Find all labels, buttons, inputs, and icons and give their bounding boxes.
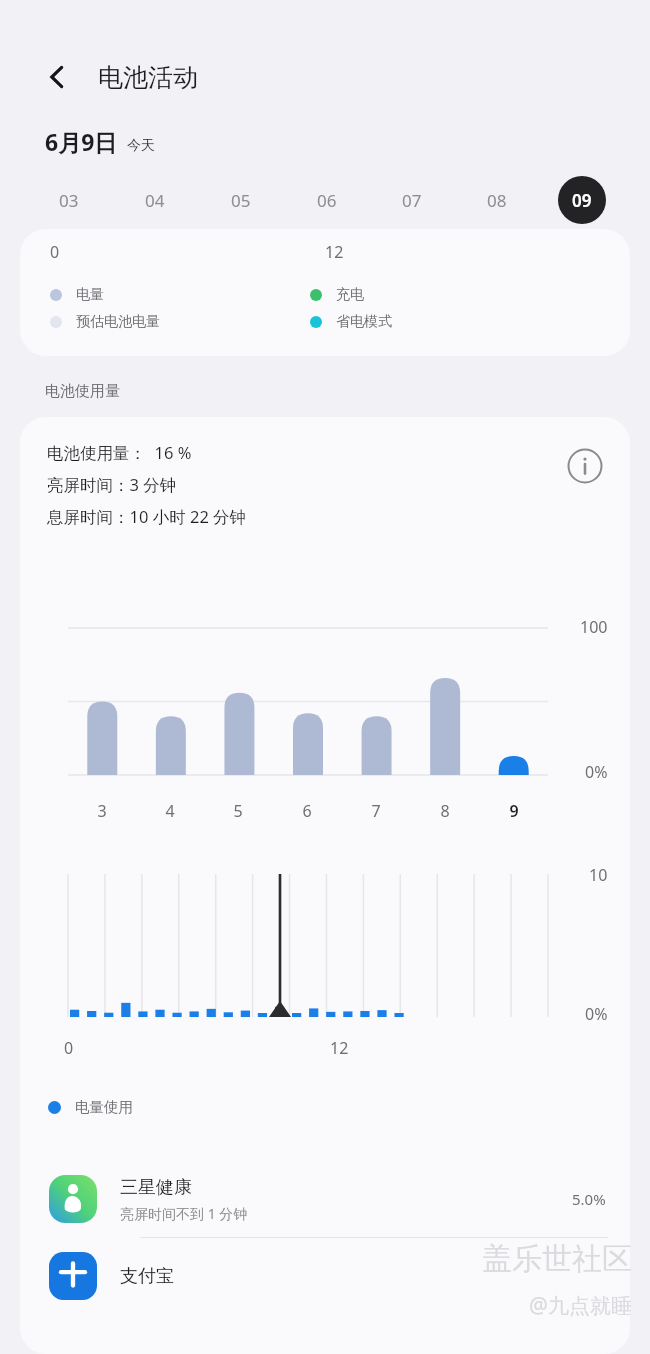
staticText: 9 xyxy=(509,800,519,822)
staticText: 3 xyxy=(97,800,107,822)
staticText: 电量 xyxy=(76,286,104,304)
staticText: 0 xyxy=(50,241,60,263)
button[interactable]: 05 xyxy=(198,171,284,229)
staticText: 亮屏时间不到 1 分钟 xyxy=(120,1204,248,1223)
button[interactable]: 04 xyxy=(112,171,198,229)
staticText: 10 xyxy=(589,864,608,886)
staticText: 8 xyxy=(440,800,450,822)
staticText: 亮屏时间：3 分钟 xyxy=(47,473,177,496)
staticText: 100 xyxy=(580,616,608,638)
staticText: 05 xyxy=(231,189,251,212)
staticText: 12 xyxy=(325,241,344,263)
staticText: 5.0% xyxy=(572,1189,606,1209)
button[interactable]: 三星健康 xyxy=(20,1161,630,1237)
staticText: 息屏时间：10 小时 22 分钟 xyxy=(47,505,247,528)
staticText: 04 xyxy=(145,189,165,212)
staticText: 7 xyxy=(371,800,381,822)
staticText: 预估电池电量 xyxy=(76,313,160,331)
staticText: 电池使用量 xyxy=(45,382,120,401)
staticText: 充电 xyxy=(336,286,364,304)
staticText: 5 xyxy=(233,800,243,822)
staticText: 0 xyxy=(64,1037,74,1059)
staticText: 12 xyxy=(330,1037,349,1059)
staticText: 09 xyxy=(572,189,592,212)
staticText: 今天 xyxy=(127,137,155,155)
staticText: 6月9日 xyxy=(45,126,118,157)
button[interactable]: 06 xyxy=(284,171,369,229)
staticText: 三星健康 xyxy=(120,1176,192,1199)
button[interactable]: 支付宝 xyxy=(20,1238,630,1314)
staticText: 电池使用量： 16 % xyxy=(47,441,192,464)
button[interactable]: Back xyxy=(30,50,84,104)
staticText: 盖乐世社区 xyxy=(482,1240,632,1278)
staticText: 0% xyxy=(585,1003,608,1025)
staticText: 省电模式 xyxy=(336,313,392,331)
staticText: 0% xyxy=(585,761,608,783)
staticText: 07 xyxy=(402,189,422,212)
staticText: 电池活动 xyxy=(98,62,198,93)
button[interactable]: Information xyxy=(562,443,608,489)
staticText: 4 xyxy=(165,800,175,822)
staticText: 支付宝 xyxy=(120,1265,174,1288)
button[interactable]: 08 xyxy=(454,171,539,229)
staticText: 03 xyxy=(59,189,79,212)
staticText: 电量使用 xyxy=(75,1098,133,1116)
staticText: 08 xyxy=(487,189,507,212)
button[interactable]: 03 xyxy=(26,171,112,229)
button[interactable]: 09 xyxy=(539,171,624,229)
staticText: 06 xyxy=(317,189,337,212)
button[interactable]: 0 xyxy=(20,229,630,356)
staticText: @九点就睡 xyxy=(529,1291,632,1320)
staticText: 6 xyxy=(302,800,312,822)
button[interactable]: 07 xyxy=(369,171,454,229)
